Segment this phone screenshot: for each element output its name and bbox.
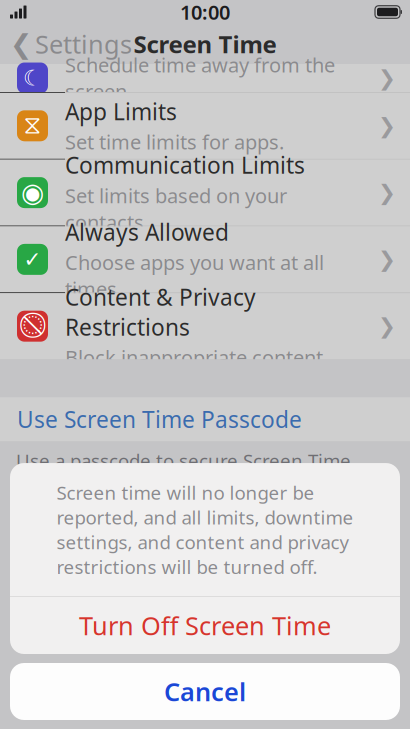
staticText: ❮ bbox=[10, 29, 32, 59]
staticText: Screen Time bbox=[133, 28, 276, 60]
staticText: ⃠ bbox=[22, 314, 42, 338]
staticText: ✓ bbox=[23, 247, 41, 271]
staticText: ⧖ bbox=[23, 113, 41, 138]
staticText: App Limits bbox=[65, 96, 177, 127]
staticText: ☾ bbox=[23, 66, 42, 90]
staticText: Block inappropriate content. bbox=[65, 344, 328, 371]
staticText: Content & Privacy Restrictions bbox=[65, 282, 256, 342]
staticText: Use a passcode to secure Screen Time set… bbox=[16, 448, 351, 523]
staticText: Cancel bbox=[164, 675, 246, 708]
staticText: 10:00 bbox=[180, 0, 230, 25]
button[interactable]: ✓ bbox=[0, 226, 410, 293]
staticText: Always Allowed bbox=[65, 217, 229, 247]
staticText: ❯ bbox=[378, 314, 396, 338]
staticText: Choose apps you want at all times. bbox=[65, 249, 324, 302]
staticText: Set limits based on your contacts. bbox=[65, 182, 287, 235]
staticText: Screen time will no longer be reported, … bbox=[56, 480, 353, 579]
button[interactable]: ❮ bbox=[0, 21, 132, 67]
staticText: Turn Off Screen Time bbox=[79, 609, 331, 642]
button[interactable]: ⧖ bbox=[0, 93, 410, 160]
staticText: ❯ bbox=[378, 114, 396, 138]
staticText: Schedule time away from the screen. bbox=[65, 51, 335, 104]
button[interactable]: ⃠ bbox=[0, 293, 410, 359]
staticText: ❯ bbox=[378, 180, 396, 205]
staticText: Communication Limits bbox=[65, 150, 305, 180]
staticText: ❯ bbox=[378, 247, 396, 271]
button[interactable]: ◉ bbox=[0, 160, 410, 226]
button[interactable]: Cancel bbox=[10, 663, 400, 720]
staticText: Use Screen Time Passcode bbox=[17, 404, 302, 434]
staticText: ◉ bbox=[21, 177, 44, 208]
staticText: ❯ bbox=[378, 66, 396, 90]
button[interactable]: Turn Off Screen Time bbox=[10, 597, 400, 654]
button[interactable]: Use Screen Time Passcode bbox=[0, 397, 410, 441]
staticText: Set time limits for apps. bbox=[65, 129, 284, 155]
staticText: Settings bbox=[35, 27, 132, 61]
